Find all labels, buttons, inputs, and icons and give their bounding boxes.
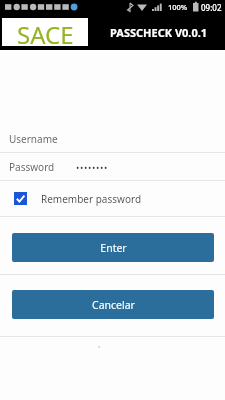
- staticText: Cancelar: [92, 298, 135, 312]
- staticText: Enter: [100, 241, 127, 255]
- button[interactable]: Remember password: [0, 181, 225, 216]
- staticText: 100%: [168, 2, 188, 12]
- button[interactable]: Username: [0, 125, 225, 152]
- staticText: Username: [9, 132, 58, 146]
- staticText: 09:02: [201, 2, 222, 13]
- staticText: Remember password: [41, 192, 142, 206]
- button[interactable]: Cancelar: [12, 290, 214, 319]
- staticText: Password: [9, 160, 55, 174]
- button[interactable]: Enter: [12, 233, 214, 262]
- staticText: ••••••••: [76, 161, 108, 173]
- staticText: PASSCHECK V0.0.1: [110, 25, 208, 40]
- staticText: SACE: [17, 18, 74, 46]
- button[interactable]: Password: [0, 153, 225, 180]
